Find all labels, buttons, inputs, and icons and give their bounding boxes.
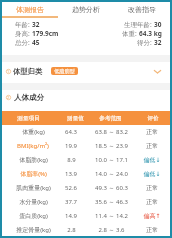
staticText: 正常 xyxy=(146,198,158,206)
button[interactable]: 肌肉重量(kg) xyxy=(2,181,170,195)
button[interactable]: 趋势分析 xyxy=(58,2,114,17)
staticText: 179.9cm xyxy=(32,29,59,38)
staticText: 蛋白质(kg) xyxy=(19,212,48,220)
staticText: 14.0 ～ 24.0 xyxy=(95,170,128,178)
button[interactable]: BMI(kg/m²) xyxy=(2,139,170,153)
button[interactable]: 体重(kg) xyxy=(2,125,170,139)
staticText: 2.8 ～ 3.6 xyxy=(98,226,125,234)
staticText: 体脂率(%) xyxy=(20,170,47,178)
staticText: 偏低↓ xyxy=(143,170,161,178)
staticText: 30 xyxy=(154,20,162,29)
staticText: BMI(kg/m²) xyxy=(17,142,49,150)
staticText: 低脂肪型 xyxy=(54,68,75,75)
staticText: 趋势分析 xyxy=(72,5,100,14)
staticText: 63.8 ～ 83.2 xyxy=(95,128,128,136)
button[interactable]: 改善指导 xyxy=(114,2,170,17)
staticText: 水分量(kg) xyxy=(19,198,48,206)
staticText: 测量值 xyxy=(67,115,84,122)
staticText: 总分: xyxy=(15,38,30,47)
staticText: 偏高↑ xyxy=(143,212,161,220)
button[interactable]: 1 xyxy=(2,64,170,78)
staticText: 推定骨量(kg) xyxy=(16,226,51,234)
staticText: 体重: xyxy=(122,29,137,38)
staticText: 64.3 xyxy=(65,128,77,136)
staticText: 年龄: xyxy=(15,20,30,29)
button[interactable]: 蛋白质(kg) xyxy=(2,209,170,223)
staticText: 14.9 xyxy=(65,212,77,220)
staticText: 35.6 ～ 46.3 xyxy=(95,198,128,206)
button[interactable]: 水分量(kg) xyxy=(2,195,170,209)
button[interactable]: Expand xyxy=(150,64,164,78)
staticText: 52.6 xyxy=(65,184,77,192)
staticText: 正常 xyxy=(146,226,158,234)
staticText: 体型归类 xyxy=(13,67,43,76)
staticText: 正常 xyxy=(146,128,158,136)
staticText: 偏低↓ xyxy=(143,156,161,164)
staticText: 37.7 xyxy=(65,198,77,206)
staticText: 19.9 xyxy=(65,142,77,150)
staticText: 8.9 xyxy=(67,156,76,164)
button[interactable]: 推定骨量(kg) xyxy=(2,223,170,237)
staticText: 10.0 ～ 17.1 xyxy=(95,156,128,164)
staticText: 正常 xyxy=(146,142,158,150)
staticText: 得分: xyxy=(137,38,152,47)
staticText: 64.3 kg xyxy=(139,29,162,38)
staticText: 测量项目 xyxy=(17,115,40,122)
staticText: 2 xyxy=(7,95,10,100)
staticText: 体重(kg) xyxy=(22,128,45,136)
button[interactable]: 体测报告 xyxy=(2,2,58,17)
staticText: 2.8 xyxy=(67,226,76,234)
staticText: 32 xyxy=(32,20,40,29)
staticText: 1 xyxy=(7,69,10,74)
button[interactable]: 2 xyxy=(2,90,170,104)
staticText: 评价 xyxy=(147,115,159,122)
button[interactable]: 体脂肪(kg) xyxy=(2,153,170,167)
staticText: 人体成分 xyxy=(14,93,44,102)
button[interactable]: 体脂率(%) xyxy=(2,167,170,181)
staticText: 正常 xyxy=(146,184,158,192)
staticText: 11.4 ～ 14.2 xyxy=(95,212,128,220)
staticText: 13.9 xyxy=(65,170,77,178)
staticText: 体脂肪(kg) xyxy=(19,156,48,164)
staticText: 身高: xyxy=(15,29,30,38)
staticText: 生理年龄: xyxy=(124,20,152,29)
staticText: 32 xyxy=(154,38,162,47)
staticText: 改善指导 xyxy=(128,5,156,14)
staticText: 49.3 ～ 60.3 xyxy=(95,184,128,192)
staticText: 18.5 ～ 23.9 xyxy=(95,142,128,150)
staticText: 体测报告 xyxy=(16,5,44,14)
staticText: 45 xyxy=(32,38,40,47)
staticText: 参考范围 xyxy=(99,115,122,122)
staticText: 肌肉重量(kg) xyxy=(16,184,51,192)
